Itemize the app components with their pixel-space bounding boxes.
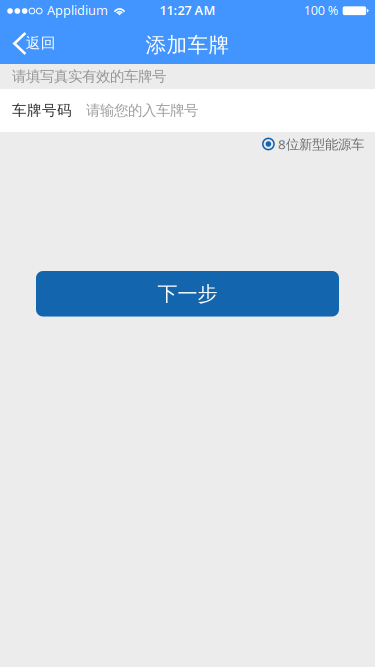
staticText: 下一步 — [157, 281, 217, 306]
button[interactable]: 返回 — [0, 20, 68, 64]
staticText: 添加车牌 — [145, 32, 229, 58]
staticText: 车牌号码 — [12, 102, 72, 119]
staticText: 请输您的入车牌号 — [86, 102, 198, 119]
staticText: 11:27 AM — [159, 1, 215, 18]
button[interactable]: 下一步 — [36, 271, 339, 316]
button[interactable]: 8位新型能源车 — [263, 135, 364, 153]
staticText: 100 % — [304, 1, 339, 18]
button[interactable]: 车牌号码 — [0, 89, 375, 132]
staticText: Applidium — [47, 1, 108, 18]
staticText: 返回 — [26, 34, 56, 52]
staticText: 8位新型能源车 — [278, 135, 364, 153]
staticText: 请填写真实有效的车牌号 — [12, 68, 166, 85]
